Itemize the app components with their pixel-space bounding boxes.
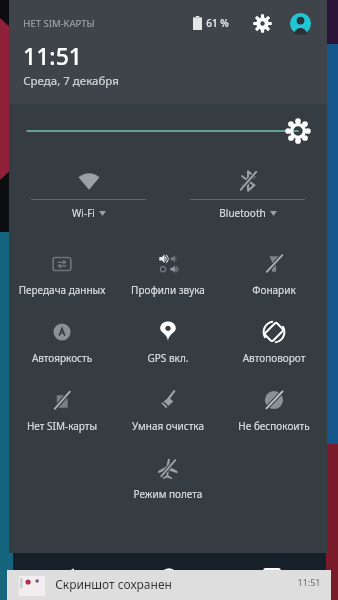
- button[interactable]: Home: [149, 557, 189, 597]
- staticText: НЕТ SIM-КАРТЫ: [23, 17, 95, 30]
- button[interactable]: Нет SIM-карты: [9, 378, 115, 446]
- button[interactable]: User profile: [285, 8, 315, 38]
- staticText: Скриншот сохранен: [55, 576, 172, 592]
- staticText: Фонарик: [221, 283, 327, 297]
- button[interactable]: GPS вкл.: [115, 310, 221, 378]
- button[interactable]: Bluetooth: [168, 158, 327, 232]
- button[interactable]: Автоповорот: [221, 310, 327, 378]
- button[interactable]: Wi-Fi: [9, 158, 168, 232]
- staticText: GPS вкл.: [115, 351, 221, 365]
- staticText: Автояркость: [9, 351, 115, 365]
- button[interactable]: Профили звука: [115, 242, 221, 310]
- staticText: 11:51: [23, 40, 82, 71]
- button[interactable]: Не беспокоить: [221, 378, 327, 446]
- staticText: Не беспокоить: [221, 419, 327, 433]
- button[interactable]: Передача данных: [9, 242, 115, 310]
- staticText: Bluetooth: [219, 206, 266, 220]
- staticText: 11:51: [297, 576, 321, 588]
- staticText: Умная очистка: [115, 419, 221, 433]
- staticText: Автоповорот: [221, 351, 327, 365]
- staticText: 61 %: [206, 16, 229, 30]
- button[interactable]: Режим полета: [115, 446, 221, 514]
- button[interactable]: Автояркость: [9, 310, 115, 378]
- staticText: Wi-Fi: [72, 206, 95, 220]
- staticText: Передача данных: [9, 283, 115, 297]
- staticText: Среда, 7 декабря: [23, 73, 119, 89]
- button[interactable]: Back: [46, 557, 86, 597]
- button[interactable]: Скриншот сохранен: [7, 570, 331, 600]
- button[interactable]: Фонарик: [221, 242, 327, 310]
- button[interactable]: Recents: [252, 557, 292, 597]
- staticText: Нет SIM-карты: [9, 419, 115, 433]
- button[interactable]: Settings: [247, 8, 277, 38]
- button[interactable]: Brightness: [9, 104, 327, 158]
- staticText: Профили звука: [115, 283, 221, 297]
- staticText: Режим полета: [115, 487, 221, 501]
- button[interactable]: Умная очистка: [115, 378, 221, 446]
